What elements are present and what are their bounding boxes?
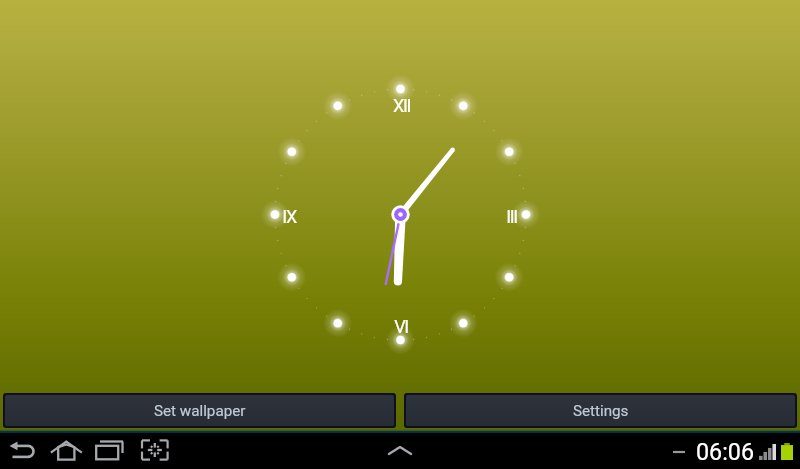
staticText: IX xyxy=(282,206,296,227)
staticText: 06:06 xyxy=(696,438,755,465)
staticText: Set wallpaper xyxy=(154,402,246,420)
button[interactable]: Settings xyxy=(406,395,795,426)
button[interactable]: Status: 06:06, battery full xyxy=(673,438,793,465)
staticText: Settings xyxy=(573,402,629,420)
staticText: XII xyxy=(393,95,410,116)
button[interactable]: Show notifications xyxy=(378,433,422,469)
button[interactable]: Recent apps xyxy=(83,433,125,469)
staticText: III xyxy=(506,206,517,227)
button[interactable]: Screenshot xyxy=(131,433,167,469)
button[interactable]: Back xyxy=(5,433,43,469)
button[interactable]: Set wallpaper xyxy=(5,395,394,426)
staticText: VI xyxy=(394,316,408,337)
button[interactable]: Home xyxy=(43,433,83,469)
